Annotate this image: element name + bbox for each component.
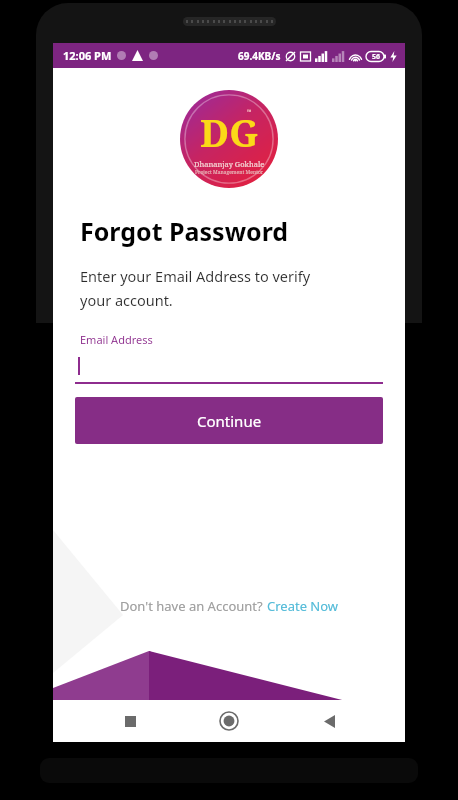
- staticText: Enter your Email Address to verify your …: [80, 266, 311, 310]
- staticText: 56: [372, 52, 381, 62]
- staticText: 12:06 PM: [63, 48, 112, 63]
- button[interactable]: Home: [206, 700, 252, 742]
- button[interactable]: Back: [306, 700, 352, 742]
- staticText: Create Now: [267, 597, 339, 615]
- staticText: Don't have an Account?: [120, 597, 267, 615]
- staticText: Project Management Mentor: [195, 169, 264, 176]
- button[interactable]: Continue: [75, 397, 383, 444]
- staticText: ™: [247, 108, 252, 116]
- staticText: Dhananjay Gokhale: [194, 159, 265, 169]
- staticText: 69.4KB/s: [238, 49, 281, 63]
- staticText: Forgot Password: [80, 214, 289, 248]
- button[interactable]: [75, 356, 383, 384]
- staticText: DG: [200, 106, 259, 158]
- staticText: Continue: [197, 411, 262, 431]
- button[interactable]: Don't have an Account?: [120, 597, 339, 615]
- button[interactable]: Recent apps: [107, 700, 153, 742]
- staticText: Email Address: [80, 332, 153, 347]
